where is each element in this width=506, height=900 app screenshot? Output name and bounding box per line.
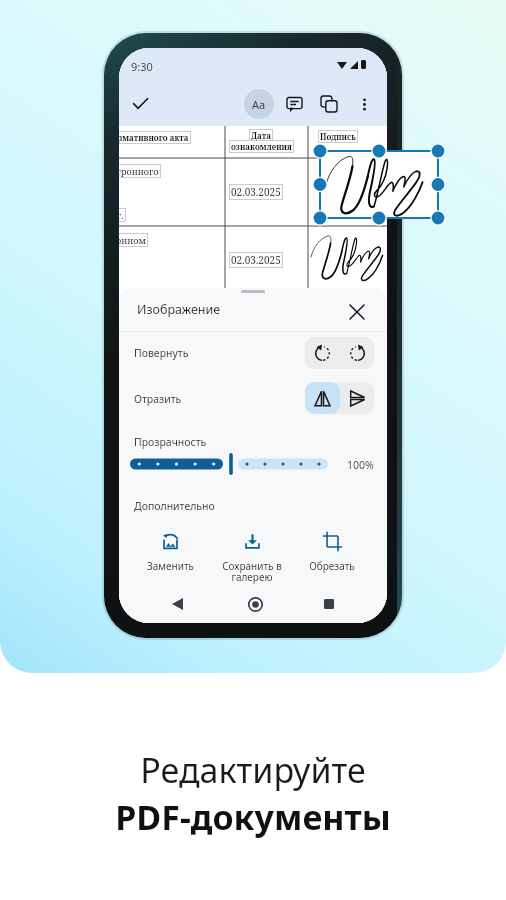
button[interactable]: Copy: [315, 90, 343, 118]
staticText: Aa: [252, 97, 266, 112]
staticText: 02.03.2025: [231, 253, 281, 267]
staticText: онном: [119, 234, 146, 246]
staticText: Отразить: [134, 392, 182, 406]
button[interactable]: Comment: [280, 90, 308, 118]
button[interactable]: Home: [242, 591, 268, 617]
staticText: 9:30: [131, 59, 153, 74]
staticText: Редактируйте: [140, 747, 366, 793]
button[interactable]: Flip horizontal: [305, 382, 340, 414]
button[interactable]: Flip vertical: [340, 382, 374, 414]
staticText: Повернуть: [134, 346, 189, 360]
staticText: г.: [119, 209, 124, 221]
staticText: тронного: [119, 165, 159, 177]
button[interactable]: Заменить: [127, 530, 213, 573]
button[interactable]: Сохранить в галерею: [209, 530, 295, 584]
staticText: рмативного акта: [119, 132, 189, 143]
button[interactable]: Rotate right: [340, 337, 374, 369]
staticText: Заменить: [147, 559, 194, 573]
button[interactable]: Aa: [244, 89, 274, 119]
button[interactable]: Обрезать: [289, 530, 375, 573]
staticText: Дата: [251, 130, 271, 141]
button[interactable]: Close: [341, 296, 373, 328]
staticText: 02.03.2025: [231, 185, 281, 199]
button[interactable]: Done: [124, 88, 156, 120]
staticText: Дополнительно: [134, 499, 215, 513]
staticText: Подпись: [320, 131, 356, 142]
button[interactable]: Recent apps: [316, 591, 342, 617]
staticText: ознакомления: [231, 141, 292, 152]
staticText: PDF-документы: [115, 794, 391, 840]
staticText: Сохранить в галерею: [222, 559, 282, 584]
staticText: Обрезать: [309, 559, 355, 573]
staticText: Изображение: [137, 301, 221, 318]
staticText: 100%: [347, 458, 374, 472]
button[interactable]: Rotate left: [305, 337, 340, 369]
button[interactable]: Back: [164, 591, 190, 617]
staticText: Прозрачность: [134, 435, 207, 449]
button[interactable]: More options: [350, 90, 378, 118]
